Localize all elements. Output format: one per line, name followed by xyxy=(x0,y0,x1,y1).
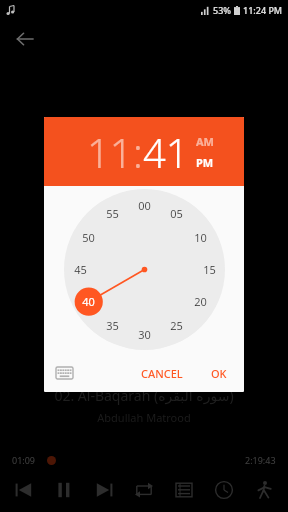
button[interactable]: PM xyxy=(196,155,214,170)
staticText: 53% xyxy=(213,4,231,16)
button[interactable]: Pause xyxy=(48,474,80,506)
staticText: 30 xyxy=(138,327,151,342)
button[interactable]: AM xyxy=(196,134,214,149)
button[interactable]: Switch to keyboard input xyxy=(52,361,76,385)
staticText: 10 xyxy=(194,230,207,245)
staticText: 05 xyxy=(170,206,183,221)
staticText: : xyxy=(133,125,143,179)
staticText: 40 xyxy=(82,294,95,309)
button[interactable]: Playlist xyxy=(168,474,200,506)
button[interactable]: OK xyxy=(204,362,234,385)
button[interactable]: CANCEL xyxy=(134,362,190,385)
staticText: 25 xyxy=(170,318,183,333)
staticText: 02. Al-Baqarah (سوره البقره) xyxy=(54,386,234,405)
staticText: 15 xyxy=(203,262,216,277)
staticText: Abdullah Matrood xyxy=(97,410,191,425)
staticText: 00 xyxy=(138,198,151,213)
staticText: 01:09 xyxy=(12,454,36,466)
staticText: 45 xyxy=(74,262,87,277)
staticText: 20 xyxy=(194,294,207,309)
button[interactable]: Next xyxy=(88,474,120,506)
staticText: 35 xyxy=(106,318,119,333)
staticText: 2:19:43 xyxy=(245,454,276,466)
staticText: OK xyxy=(211,366,227,381)
button[interactable]: Previous xyxy=(8,474,40,506)
button[interactable]: 11 xyxy=(87,125,133,179)
button[interactable]: Shake xyxy=(248,474,280,506)
staticText: 11:24 PM xyxy=(243,4,283,16)
button[interactable]: Repeat xyxy=(128,474,160,506)
button[interactable]: Sleep timer xyxy=(208,474,240,506)
staticText: 55 xyxy=(106,206,119,221)
button[interactable]: Back xyxy=(8,22,42,56)
staticText: 50 xyxy=(82,230,95,245)
staticText: CANCEL xyxy=(141,366,183,381)
button[interactable]: 41 xyxy=(143,125,189,179)
